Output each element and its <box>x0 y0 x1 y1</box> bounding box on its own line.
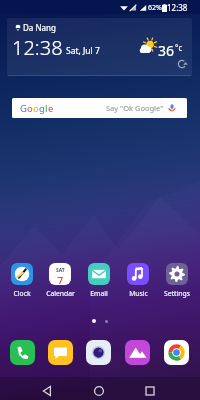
staticText: °c <box>175 42 183 53</box>
staticText: o <box>27 102 33 115</box>
staticText: G <box>20 102 27 115</box>
staticText: 62% <box>148 3 162 13</box>
button[interactable]: Music <box>119 263 157 298</box>
button[interactable]: Back <box>38 381 58 400</box>
button[interactable]: SAT <box>41 263 79 298</box>
staticText: 12:38 <box>167 2 188 13</box>
button[interactable]: Recents <box>140 381 160 400</box>
button[interactable]: Email <box>80 263 118 298</box>
staticText: 36 <box>158 41 175 60</box>
button[interactable]: Da Nang <box>7 18 192 76</box>
button[interactable]: G <box>12 98 187 118</box>
button[interactable]: Settings <box>158 263 196 298</box>
button[interactable]: Camera <box>86 340 111 365</box>
staticText: 12:38 <box>12 34 63 61</box>
button[interactable]: Messages <box>48 340 73 365</box>
button[interactable]: Gallery <box>125 340 150 365</box>
staticText: SAT <box>56 267 65 274</box>
staticText: Calendar <box>46 289 75 298</box>
button[interactable]: Refresh <box>175 57 189 71</box>
button[interactable]: Chrome <box>164 340 189 365</box>
button[interactable]: Clock <box>3 263 41 298</box>
staticText: Da Nang <box>23 22 56 33</box>
staticText: Settings <box>164 289 190 298</box>
staticText: e <box>48 102 54 115</box>
button[interactable]: Home <box>89 381 109 400</box>
staticText: l <box>45 102 48 115</box>
staticText: Say "Ok Google" <box>106 103 164 113</box>
staticText: Clock <box>13 289 31 298</box>
button[interactable]: Phone <box>10 340 35 365</box>
staticText: Sat, Jul 7 <box>66 45 100 57</box>
staticText: o <box>33 102 39 115</box>
staticText: Music <box>129 289 148 298</box>
staticText: 7 <box>57 273 64 284</box>
staticText: g <box>39 102 45 115</box>
staticText: Email <box>90 289 108 298</box>
